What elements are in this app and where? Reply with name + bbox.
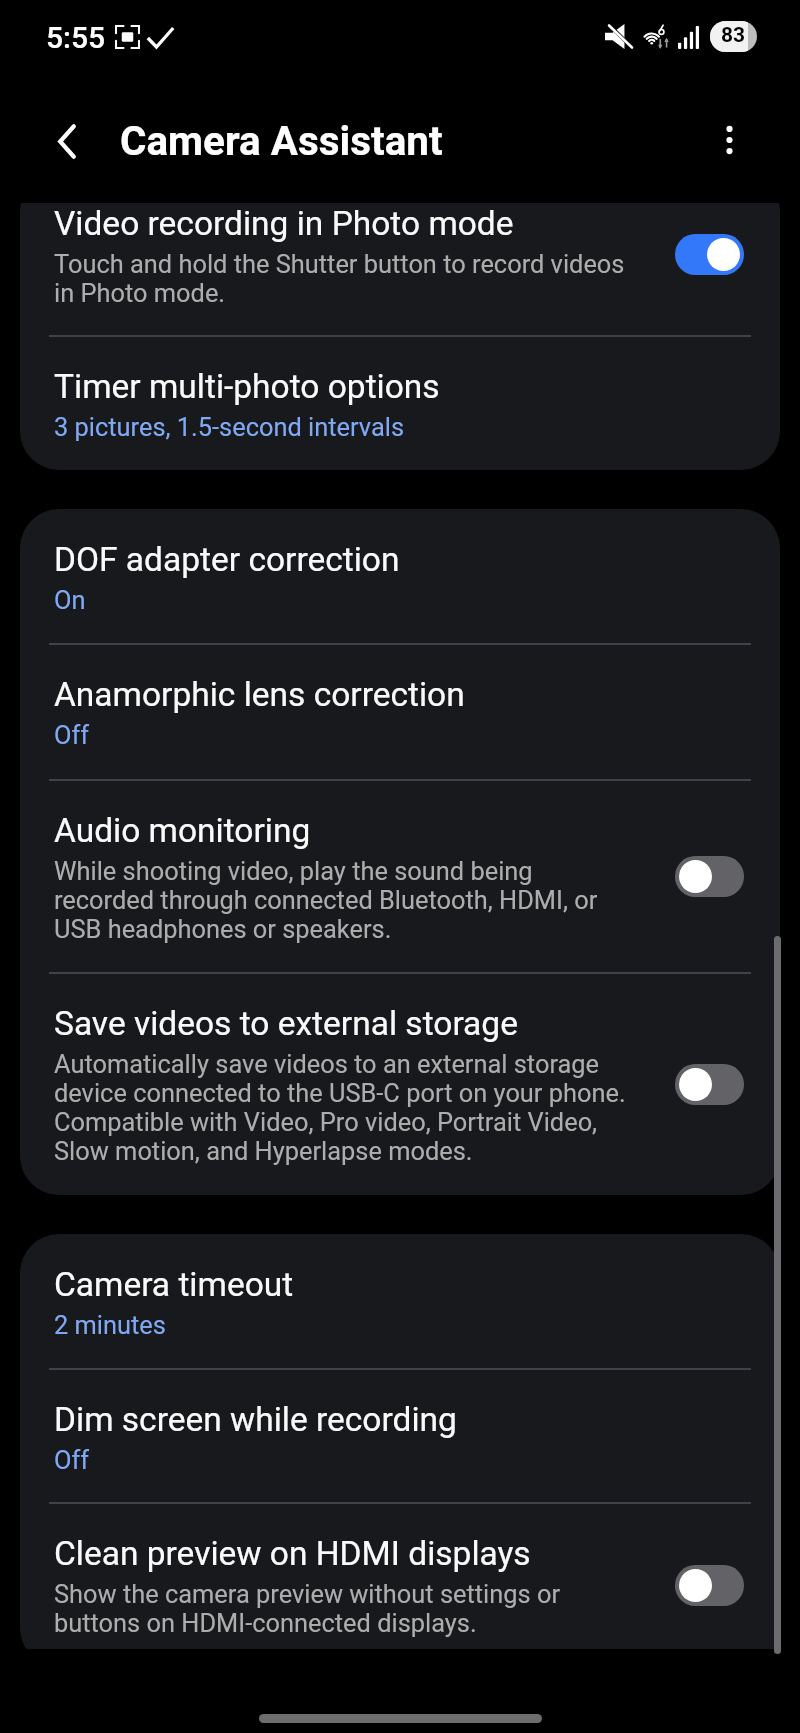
staticText: DOF adapter correction [54,540,400,579]
staticText: Timer multi-photo options [54,367,440,406]
staticText: 3 pictures, 1.5-second intervals [54,413,405,442]
button[interactable]: Camera timeout [20,1234,780,1369]
staticText: On [54,586,86,615]
staticText: Save videos to external storage [54,1004,518,1043]
button[interactable]: Save videos to external storage [20,973,780,1195]
staticText: Show the camera preview without settings… [54,1580,627,1638]
staticText: Audio monitoring [54,811,311,850]
button[interactable]: Disabled [675,856,744,897]
button[interactable]: Anamorphic lens correction [20,644,780,780]
staticText: Off [54,721,90,750]
staticText: Automatically save videos to an external… [54,1050,627,1166]
button[interactable]: Disabled [675,1064,744,1105]
staticText: Dim screen while recording [54,1400,457,1439]
staticText: Touch and hold the Shutter button to rec… [54,250,627,308]
staticText: While shooting video, play the sound bei… [54,857,627,944]
staticText: 2 minutes [54,1311,166,1340]
staticText: Clean preview on HDMI displays [54,1534,531,1573]
button[interactable]: Dim screen while recording [20,1369,780,1503]
button[interactable]: Navigate up [33,105,104,176]
button[interactable]: Disabled [675,1565,744,1606]
button[interactable]: Clean preview on HDMI displays [20,1503,780,1649]
staticText: Video recording in Photo mode [54,204,514,243]
button[interactable]: More options [694,105,765,176]
button[interactable]: Timer multi-photo options [20,336,780,470]
staticText: Anamorphic lens correction [54,675,465,714]
button[interactable]: Enabled [675,234,744,275]
button[interactable]: DOF adapter correction [20,509,780,644]
button[interactable]: Audio monitoring [20,780,780,973]
button[interactable]: Video recording in Photo mode [20,203,780,336]
staticText: Camera Assistant [120,118,443,165]
staticText: Off [54,1446,90,1475]
staticText: Camera timeout [54,1265,294,1304]
staticText: 83 [721,23,746,48]
staticText: 5:55 [46,20,106,55]
